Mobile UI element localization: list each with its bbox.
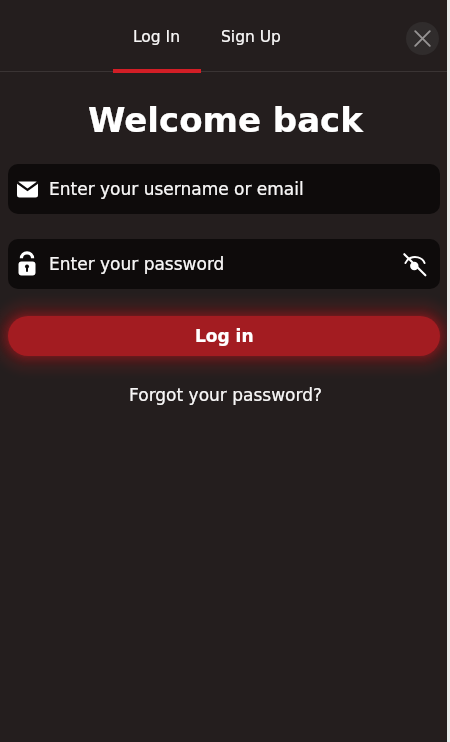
staticText: Sign Up (221, 28, 281, 46)
staticText: Log In (133, 28, 181, 46)
button[interactable] (399, 248, 431, 280)
staticText: Log in (195, 326, 254, 346)
button[interactable] (405, 21, 440, 56)
button[interactable]: Log In (113, 14, 201, 60)
button[interactable]: Enter your password (8, 239, 440, 289)
button[interactable]: Enter your username or email (8, 164, 440, 214)
staticText: Welcome back (88, 100, 363, 140)
button[interactable]: Forgot your password? (129, 385, 322, 405)
staticText: Enter your username or email (49, 179, 304, 199)
button[interactable]: Sign Up (216, 14, 286, 60)
staticText: Forgot your password? (129, 385, 322, 405)
button[interactable]: Log in (8, 316, 440, 356)
staticText: Enter your password (49, 254, 225, 274)
